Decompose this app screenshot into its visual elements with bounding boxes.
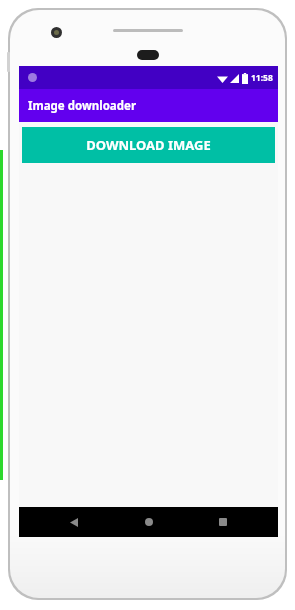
button[interactable]: Back [54,507,94,537]
staticText: DOWNLOAD IMAGE [86,136,211,154]
button[interactable]: Recent apps [203,507,243,537]
staticText: 11:58 [251,72,273,84]
staticText: Image downloader [28,98,137,114]
button[interactable]: Home [129,507,169,537]
button[interactable]: DOWNLOAD IMAGE [22,127,275,163]
